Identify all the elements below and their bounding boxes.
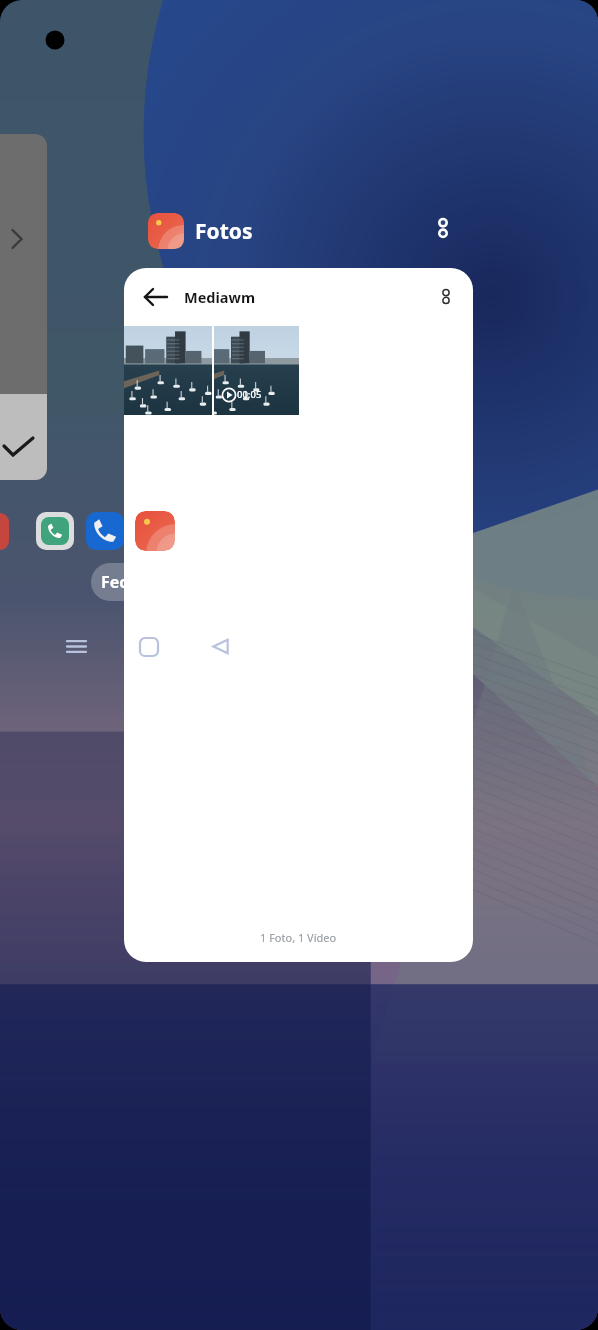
button[interactable]: [0, 134, 47, 480]
staticText: Fechar tudo: [101, 571, 197, 593]
staticText: 00:05: [237, 388, 262, 401]
button[interactable]: Fotos: [135, 511, 175, 551]
button[interactable]: [0, 394, 47, 480]
button[interactable]: Voltar: [124, 268, 473, 962]
staticText: 1 Foto, 1 Vídeo: [260, 930, 337, 945]
button[interactable]: Mais opções da app: [424, 209, 462, 247]
button[interactable]: Início: [130, 628, 167, 665]
button[interactable]: Voltar: [202, 628, 239, 665]
button[interactable]: Telefone: [86, 512, 124, 550]
button[interactable]: Mensagens: [36, 512, 74, 550]
button[interactable]: Voltar: [142, 283, 170, 311]
button[interactable]: 00:05: [214, 326, 299, 415]
staticText: Mediawm: [184, 287, 256, 307]
button[interactable]: App: [0, 513, 9, 550]
staticText: Fotos: [195, 217, 253, 246]
button[interactable]: [148, 213, 184, 249]
button[interactable]: Fotos: [195, 217, 253, 246]
button[interactable]: [124, 326, 212, 415]
button[interactable]: Fechar tudo: [91, 563, 207, 601]
button[interactable]: Mais opções: [433, 284, 459, 310]
button[interactable]: Recentes: [58, 628, 95, 665]
